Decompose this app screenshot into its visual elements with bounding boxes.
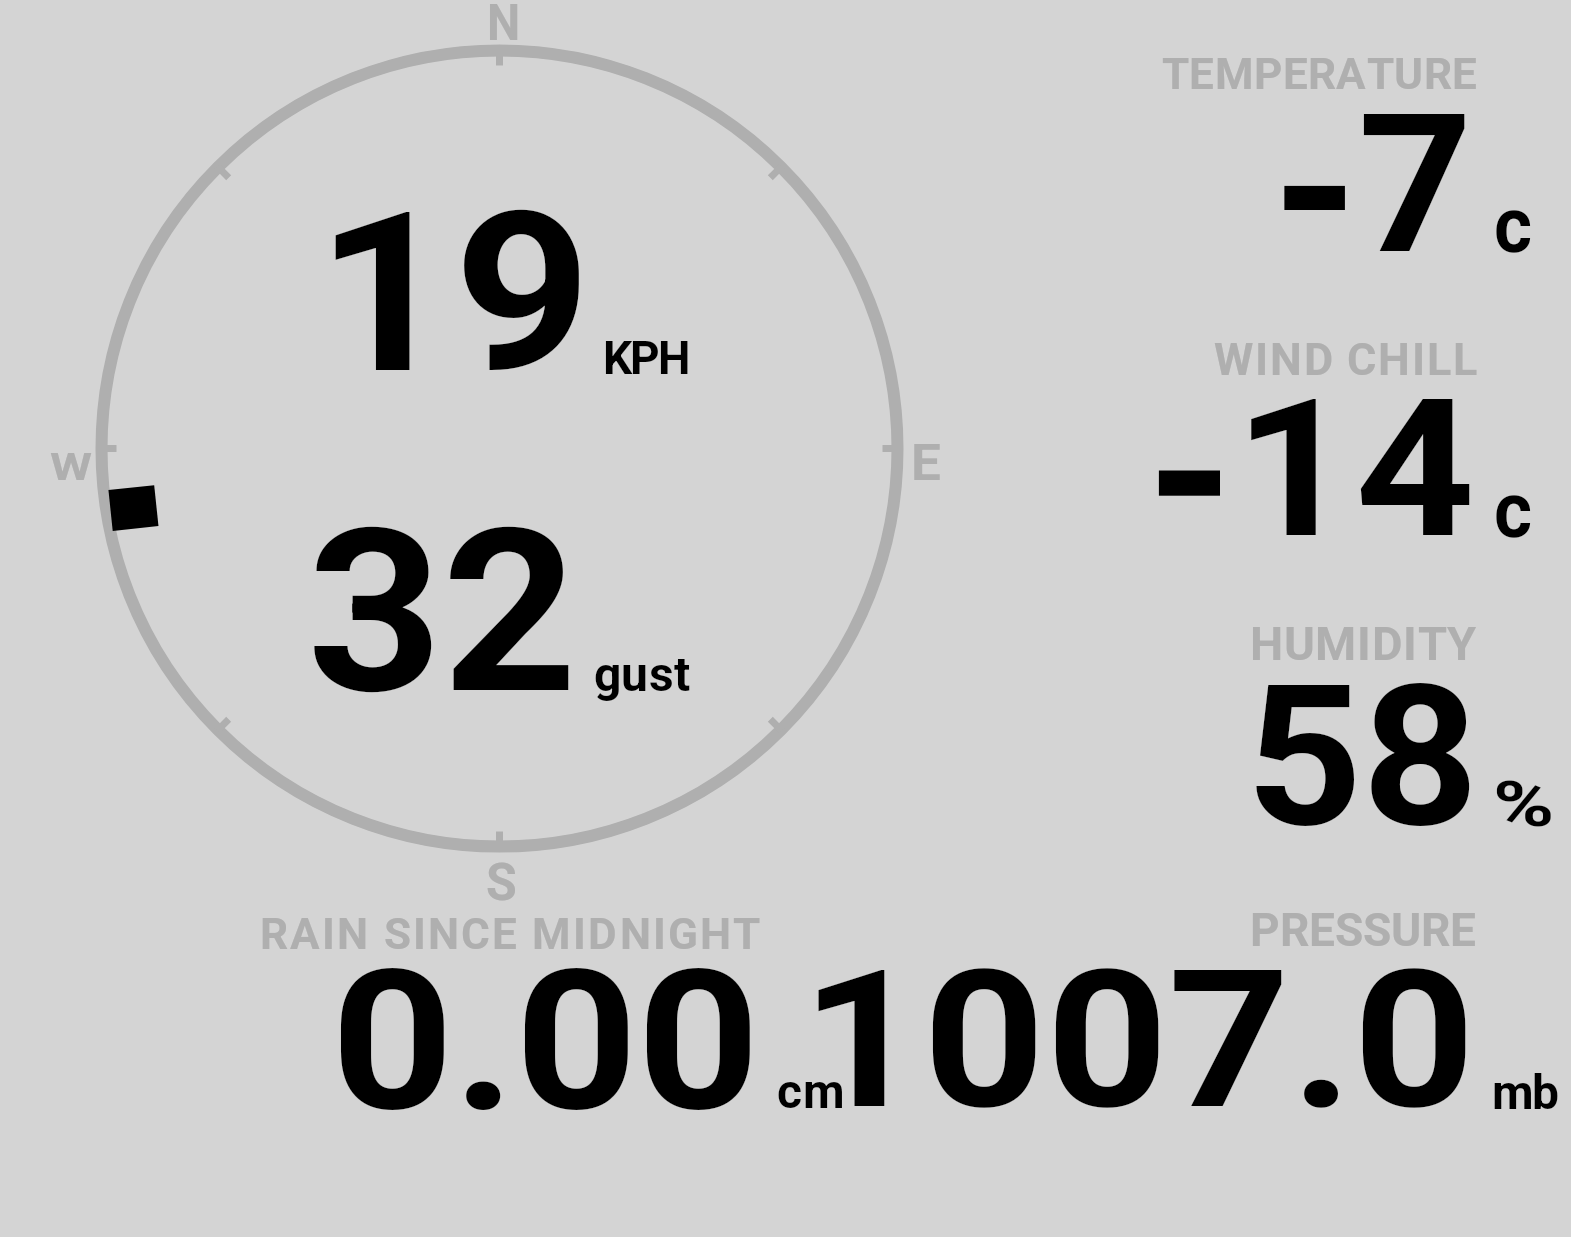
button[interactable]: Rain since midnight [250,905,850,1120]
other: Weather station dashboard [0,0,1571,1237]
button[interactable]: Pressure [860,905,1560,1120]
button[interactable]: Temperature [1000,40,1560,270]
button[interactable]: Humidity [1000,615,1560,840]
button[interactable]: Wind speed and direction [96,44,904,854]
button[interactable]: Wind chill [1000,330,1560,560]
